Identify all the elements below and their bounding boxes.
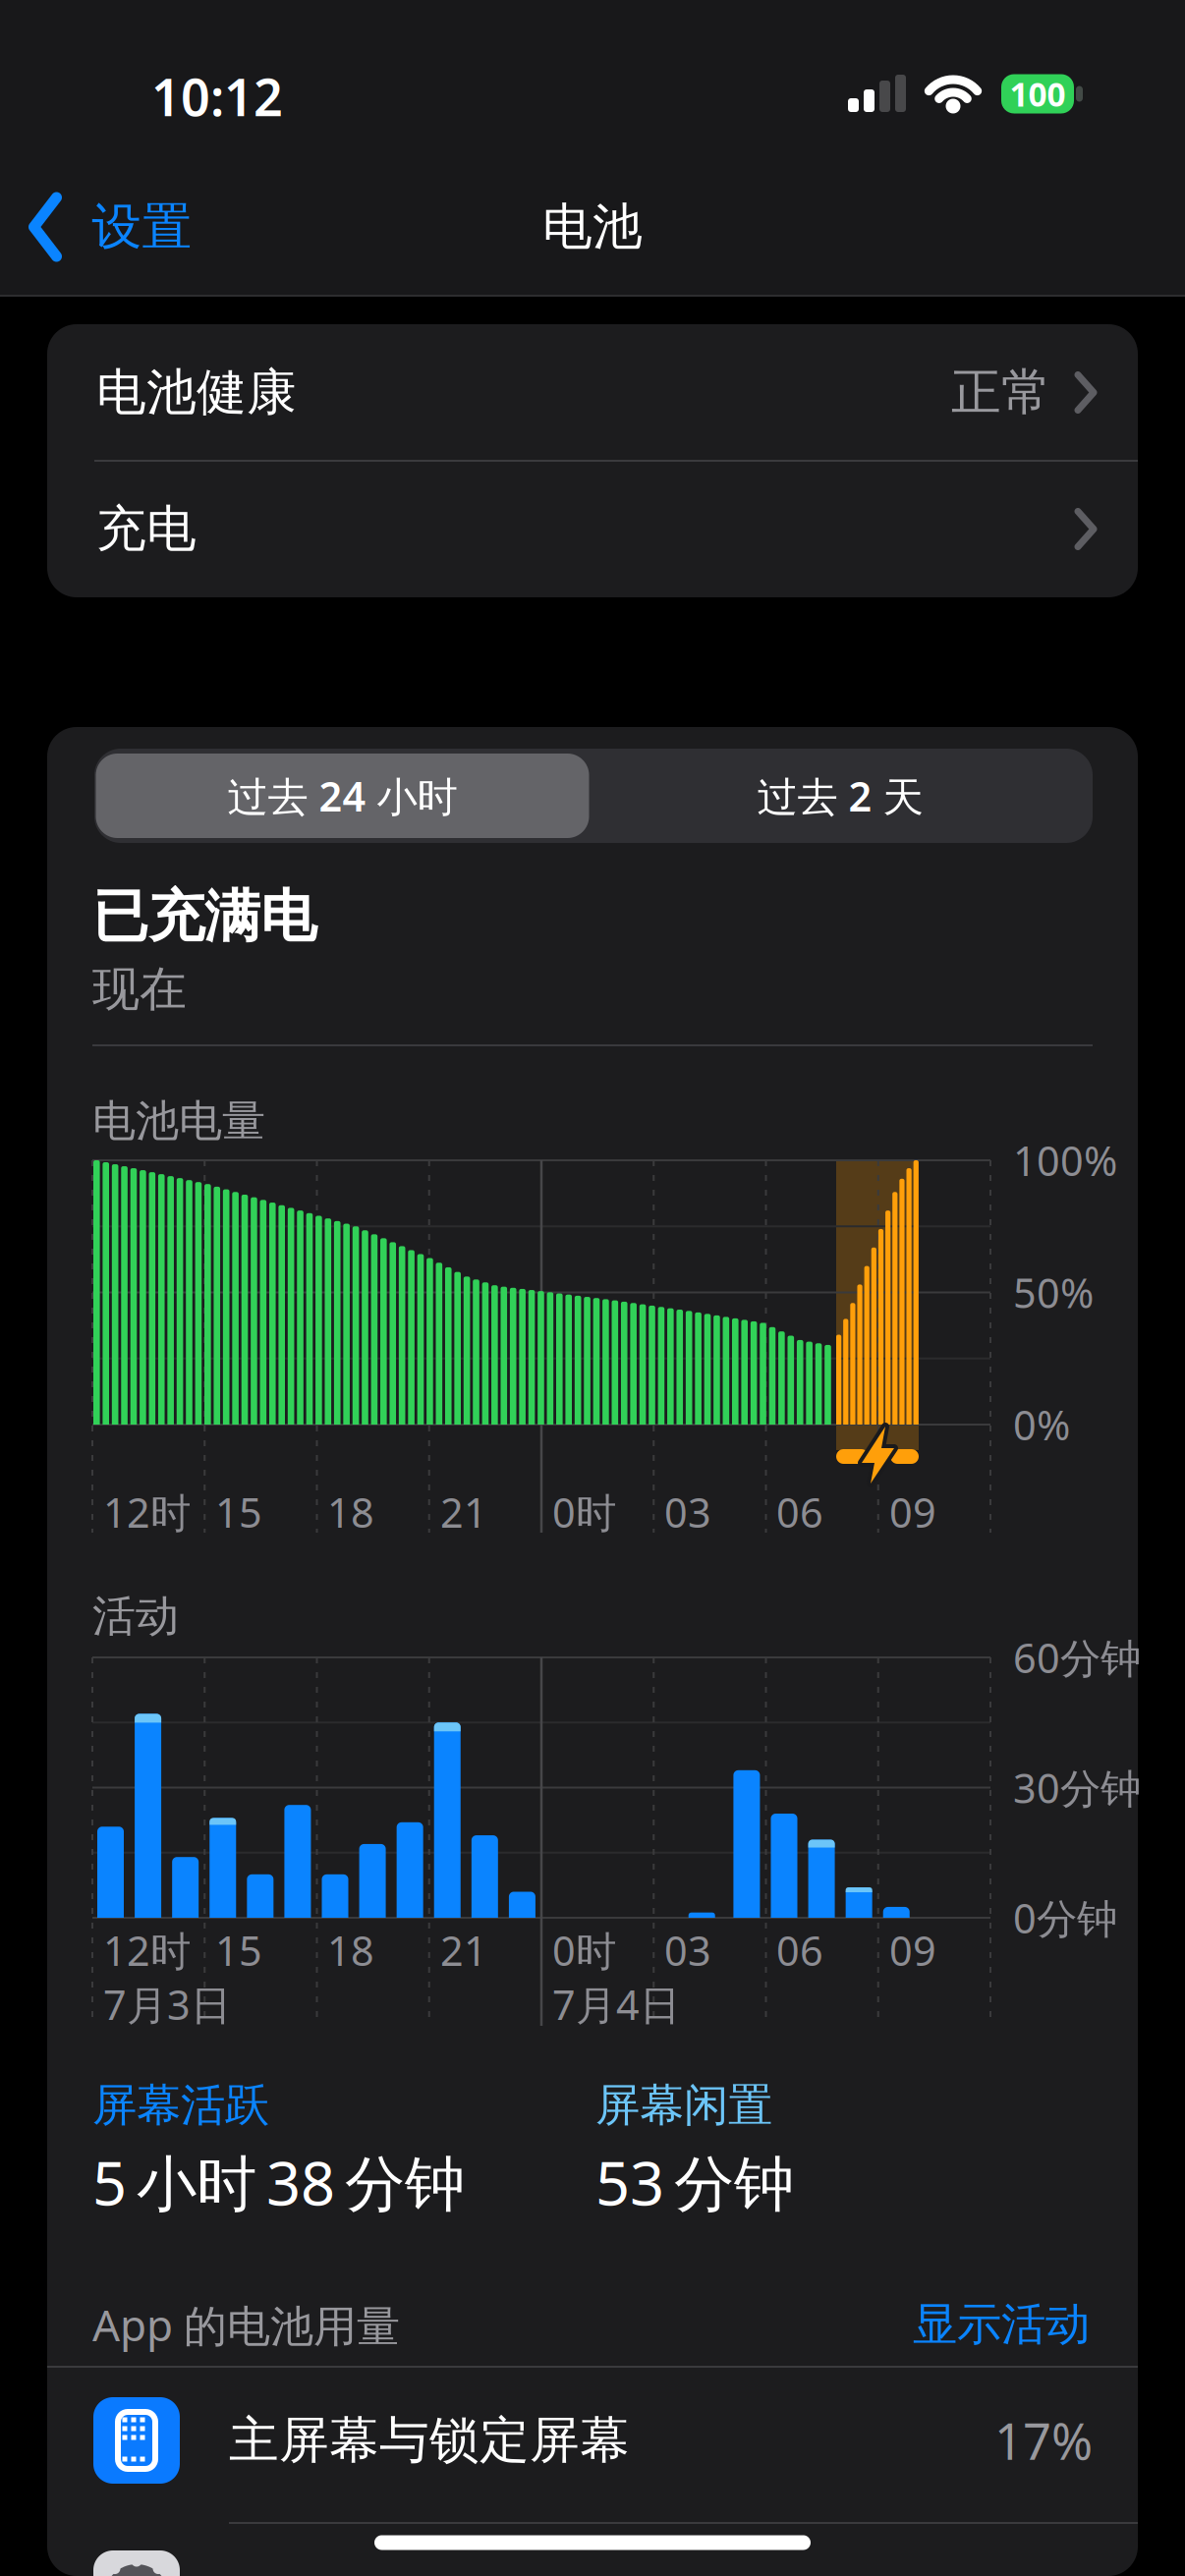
staticText: 正常 [951, 362, 1051, 423]
staticText: 50% [1013, 1266, 1094, 1319]
staticText: 03 [664, 1923, 711, 1977]
staticText: 活动 [92, 1590, 179, 1643]
staticText: 100 [1010, 72, 1066, 116]
staticText: 电池 [542, 196, 643, 258]
staticText: 30分钟 [1013, 1761, 1141, 1815]
staticText: 21 [440, 1485, 487, 1539]
staticText: 显示活动 [913, 2297, 1090, 2352]
staticText: 09 [889, 1923, 936, 1977]
staticText: 12时 [103, 1485, 191, 1539]
staticText: 10:12 [151, 62, 283, 130]
staticText: 60分钟 [1013, 1630, 1141, 1684]
staticText: 设置 [92, 196, 192, 258]
staticText: 0时 [552, 1485, 616, 1539]
staticText: 06 [776, 1485, 823, 1539]
staticText: 18 [327, 1485, 374, 1539]
staticText: 电池电量 [92, 1094, 265, 1148]
staticText: 09 [889, 1485, 936, 1539]
button[interactable]: 过去 24 小时 [96, 754, 589, 838]
button[interactable]: 主屏幕与锁定屏幕 [47, 2378, 1138, 2503]
button[interactable]: 电池健康 [47, 324, 1138, 461]
button[interactable]: 过去 2 天 [604, 754, 1076, 838]
staticText: 过去 2 天 [757, 769, 923, 823]
staticText: 0时 [552, 1923, 616, 1977]
staticText: 18 [327, 1923, 374, 1977]
staticText: 100% [1013, 1133, 1117, 1187]
staticText: 5 小时 38 分钟 [92, 2142, 465, 2222]
staticText: 0分钟 [1013, 1891, 1117, 1945]
staticText: 06 [776, 1923, 823, 1977]
staticText: 21 [440, 1923, 487, 1977]
staticText: 7月4日 [552, 1977, 680, 2031]
button[interactable]: 设置 [93, 2550, 180, 2576]
staticText: 12时 [103, 1923, 191, 1977]
staticText: 03 [664, 1485, 711, 1539]
button[interactable]: 显示活动 [913, 2297, 1090, 2352]
staticText: 15 [215, 1485, 262, 1539]
button[interactable]: 充电 [47, 461, 1138, 597]
staticText: 15 [215, 1923, 262, 1977]
staticText: 充电 [96, 498, 197, 560]
staticText: 屏幕闲置 [595, 2078, 772, 2133]
staticText: 主屏幕与锁定屏幕 [229, 2410, 630, 2471]
staticText: 屏幕活跃 [92, 2078, 269, 2133]
staticText: 过去 24 小时 [227, 769, 457, 823]
staticText: 现在 [92, 960, 187, 1018]
staticText: 已充满电 [92, 882, 316, 951]
staticText: App 的电池用量 [92, 2296, 400, 2353]
staticText: 电池健康 [96, 362, 297, 423]
staticText: 17% [994, 2407, 1093, 2474]
staticText: 53 分钟 [595, 2142, 794, 2222]
staticText: 0% [1013, 1398, 1070, 1452]
staticText: 7月3日 [103, 1977, 231, 2031]
button[interactable]: 设置 [28, 195, 192, 259]
